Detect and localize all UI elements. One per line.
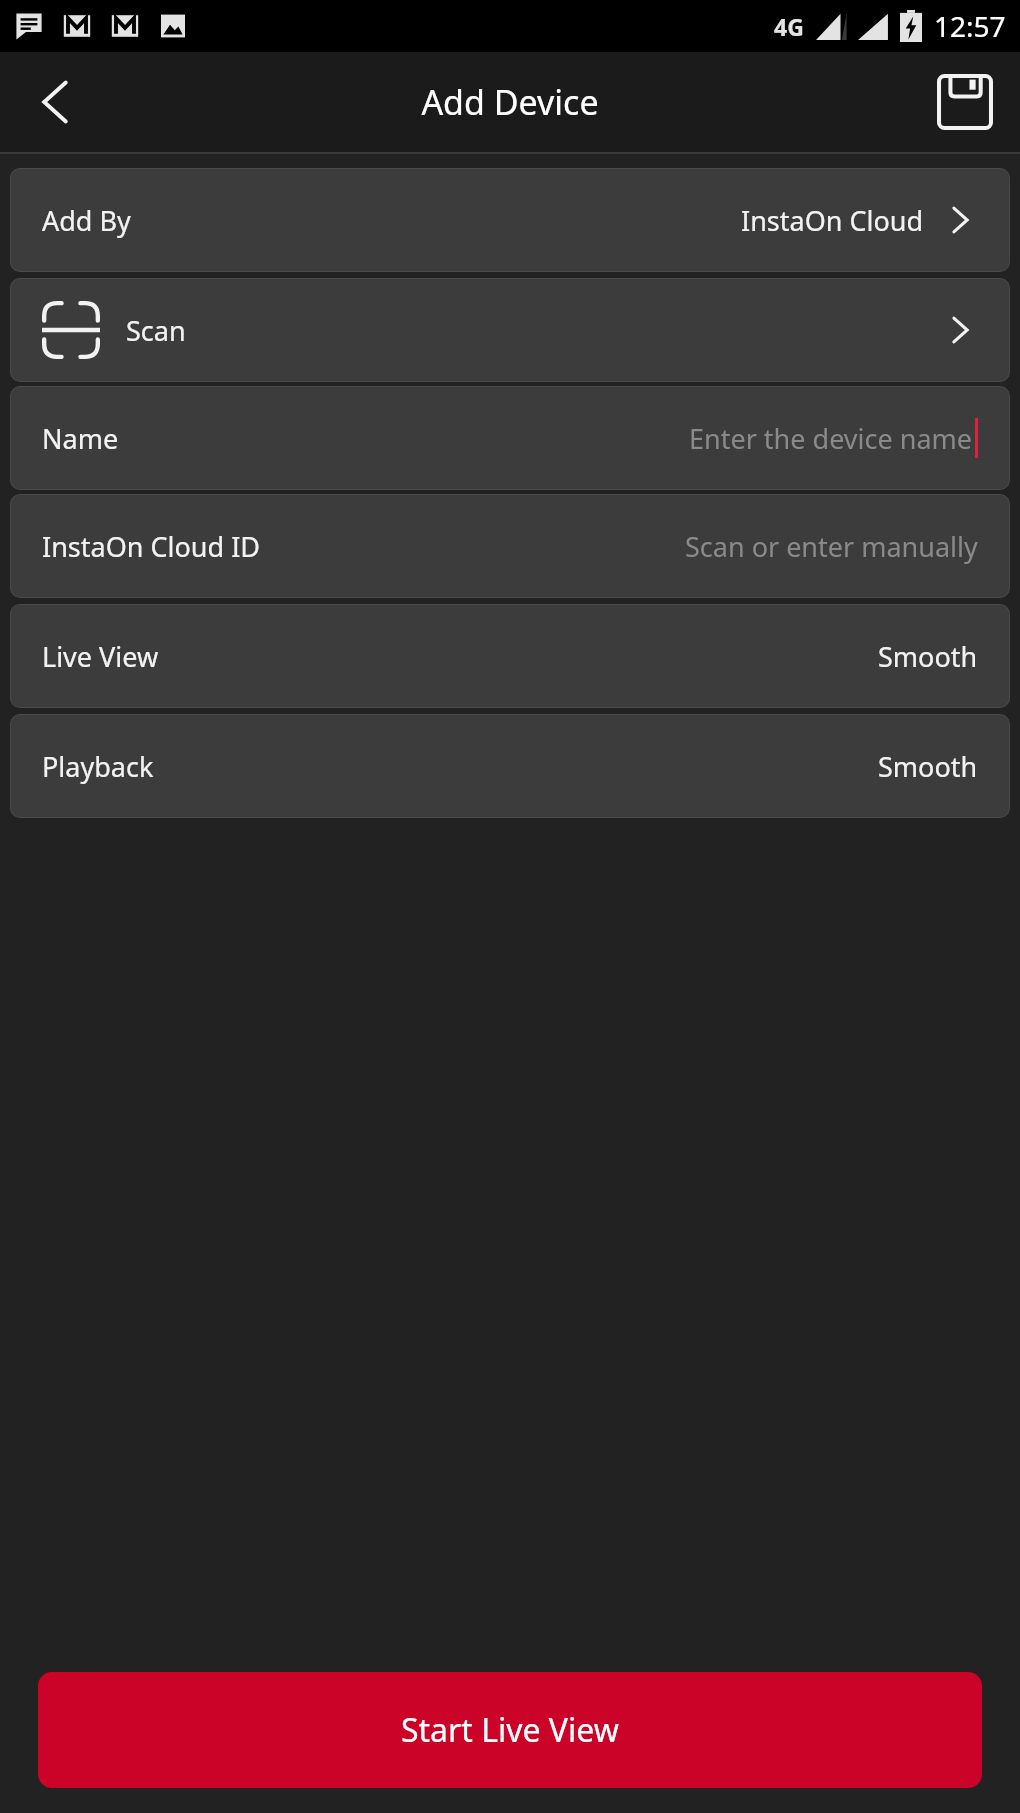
button[interactable]: Add By: [10, 168, 1010, 272]
staticText: Enter the device name: [689, 420, 973, 457]
button[interactable]: Playback: [10, 714, 1010, 818]
staticText: Name: [42, 420, 119, 457]
button[interactable]: Save: [910, 52, 1020, 152]
staticText: Add By: [42, 202, 131, 239]
staticText: 12:57: [934, 7, 1006, 45]
staticText: InstaOn Cloud ID: [42, 528, 260, 565]
staticText: Scan or enter manually: [685, 528, 978, 565]
staticText: Smooth: [878, 638, 978, 675]
staticText: Start Live View: [401, 1708, 619, 1752]
staticText: InstaOn Cloud: [741, 202, 924, 239]
staticText: Smooth: [878, 748, 978, 785]
button[interactable]: Scan: [10, 278, 1010, 382]
staticText: 4G: [774, 11, 804, 42]
staticText: Add Device: [421, 79, 599, 125]
staticText: Playback: [42, 748, 154, 785]
button[interactable]: InstaOn Cloud ID: [10, 494, 1010, 598]
button[interactable]: Back: [0, 52, 110, 152]
button[interactable]: Live View: [10, 604, 1010, 708]
staticText: Live View: [42, 638, 159, 675]
staticText: Scan: [126, 312, 186, 349]
button[interactable]: Name: [10, 386, 1010, 490]
button[interactable]: Start Live View: [38, 1672, 982, 1788]
